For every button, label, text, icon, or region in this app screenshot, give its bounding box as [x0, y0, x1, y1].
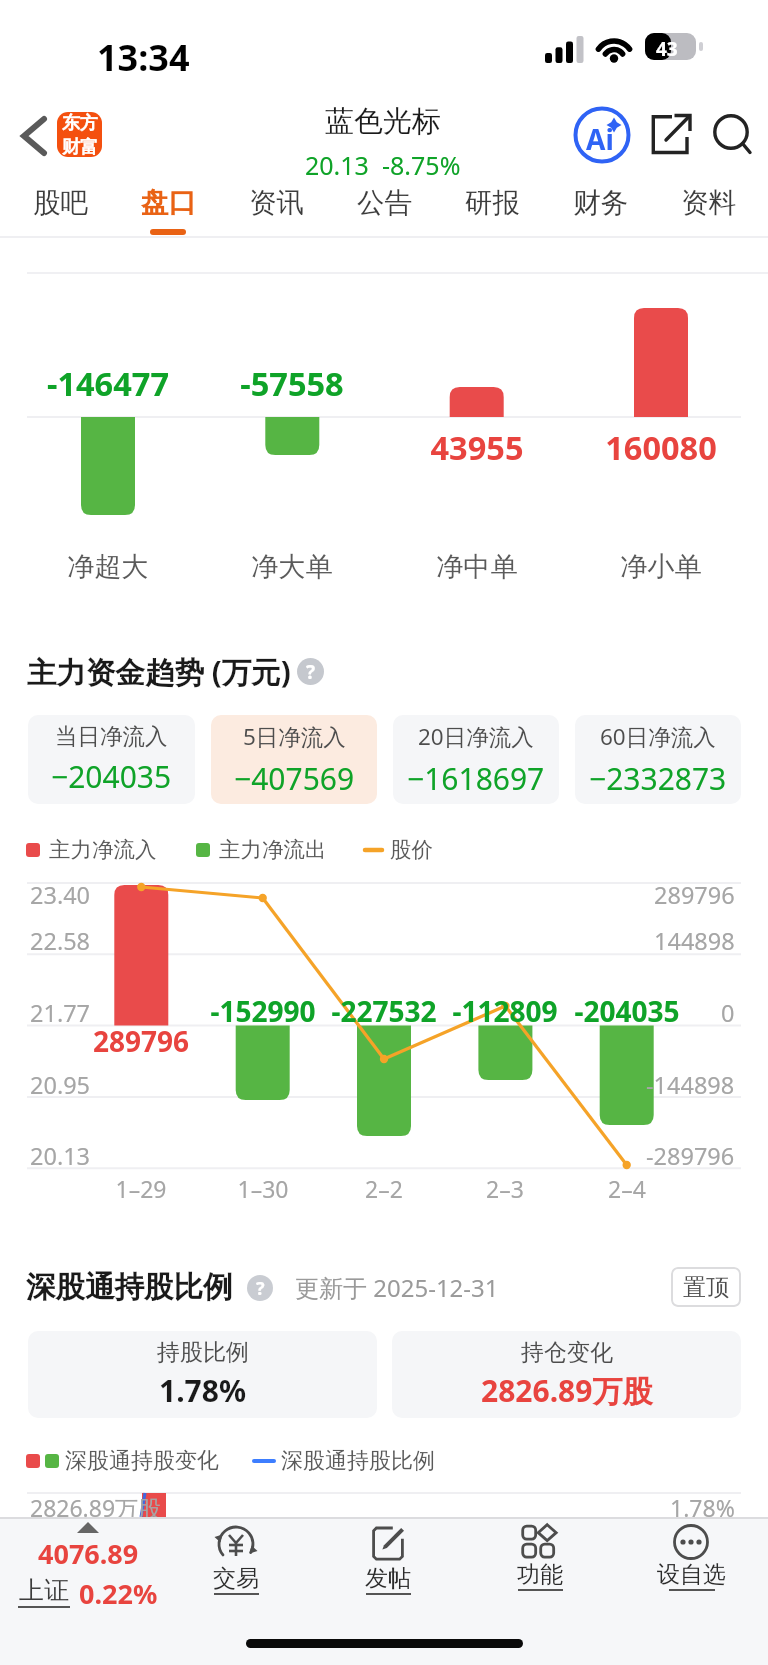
staticText: 1–29 [41, 1173, 241, 1204]
staticText: 置顶 [683, 1273, 729, 1302]
staticText: 20.95 [30, 1069, 91, 1101]
staticText: 0 [721, 997, 735, 1029]
staticText: 2–2 [284, 1173, 484, 1204]
staticText: Ai [586, 120, 614, 158]
staticText: 净大单 [192, 550, 392, 584]
staticText: 20.13 [30, 1140, 91, 1172]
staticText: 净小单 [561, 550, 761, 584]
button[interactable]: 财务 [546, 186, 654, 235]
staticText: 东方 [62, 112, 98, 135]
button[interactable]: 持股比例 [28, 1331, 377, 1418]
staticText: -227532 [234, 992, 534, 1030]
staticText: 持股比例 [157, 1338, 249, 1367]
staticText: 289796 [0, 1022, 291, 1060]
staticText: 深股通持股变化 [65, 1447, 219, 1475]
staticText: 2826.89万股 [481, 1370, 653, 1411]
button[interactable]: 当日净流入 [28, 715, 195, 804]
button[interactable]: Search [708, 110, 760, 162]
button[interactable]: 资讯 [222, 186, 330, 235]
staticText: 股价 [390, 836, 433, 863]
staticText: 160080 [511, 425, 768, 469]
staticText: 1.78% [670, 1492, 735, 1523]
staticText: 设自选 [657, 1560, 726, 1589]
button[interactable]: 持仓变化 [392, 1331, 741, 1418]
staticText: 持仓变化 [521, 1338, 613, 1367]
staticText: 21.77 [30, 997, 91, 1029]
staticText: 上证 [19, 1575, 69, 1606]
button[interactable]: 交易 [176, 1524, 296, 1595]
button[interactable]: 东方 [57, 112, 102, 157]
staticText: 深股通持股比例 [281, 1447, 435, 1475]
staticText: −1618697 [407, 758, 545, 799]
button[interactable]: 置顶 [671, 1267, 741, 1307]
staticText: 13:34 [97, 33, 190, 82]
staticText: -112809 [355, 992, 655, 1030]
staticText: 资讯 [249, 186, 304, 221]
staticText: -146477 [0, 361, 258, 405]
staticText: -289796 [646, 1140, 735, 1172]
staticText: 净中单 [377, 550, 577, 584]
staticText: 23.40 [30, 879, 91, 911]
staticText: −2332873 [589, 758, 727, 799]
staticText: 股吧 [33, 186, 88, 221]
staticText: ? [256, 1276, 265, 1301]
staticText: 主力净流入 [49, 836, 157, 863]
staticText: 资料 [681, 186, 736, 221]
button[interactable]: Help [297, 658, 324, 685]
button[interactable]: 5日净流入 [211, 715, 377, 804]
staticText: 发帖 [365, 1564, 411, 1593]
button[interactable]: Back [12, 108, 56, 164]
staticText: 43 [656, 36, 678, 62]
button[interactable]: AI assistant [573, 106, 631, 164]
staticText: 60日净流入 [600, 721, 716, 752]
staticText: 5日净流入 [243, 721, 346, 752]
staticText: 0.22% [79, 1575, 158, 1612]
staticText: 2–4 [527, 1173, 727, 1204]
staticText: −407569 [234, 758, 355, 799]
staticText: -152990 [113, 992, 413, 1030]
staticText: -8.75% [382, 148, 461, 182]
button[interactable]: 盘口 [114, 186, 222, 235]
staticText: 主力资金趋势 (万元) [27, 651, 291, 691]
staticText: 289796 [654, 879, 735, 911]
button[interactable]: Help [247, 1275, 273, 1301]
staticText: 研报 [465, 186, 520, 221]
staticText: 2826.89万股 [30, 1492, 162, 1523]
staticText: 1–30 [163, 1173, 363, 1204]
staticText: 财富 [62, 136, 98, 157]
button[interactable]: 功能 [480, 1524, 600, 1591]
button[interactable]: 公告 [330, 186, 438, 235]
staticText: 净超大 [8, 550, 208, 584]
staticText: 公告 [357, 186, 412, 221]
staticText: 20.13 [305, 148, 369, 182]
button[interactable]: 股吧 [6, 186, 114, 235]
staticText: 功能 [517, 1560, 563, 1589]
staticText: 4076.89 [38, 1535, 139, 1572]
button[interactable]: 设自选 [631, 1524, 751, 1591]
staticText: 20日净流入 [418, 721, 534, 752]
staticText: 蓝色光标 [325, 103, 441, 140]
button[interactable]: 研报 [438, 186, 546, 235]
staticText: 当日净流入 [55, 722, 168, 750]
button[interactable]: 60日净流入 [575, 715, 741, 804]
staticText: 主力净流出 [219, 836, 327, 863]
staticText: -204035 [477, 992, 768, 1030]
staticText: 43955 [327, 425, 627, 469]
button[interactable]: 4076.89 [10, 1522, 166, 1612]
staticText: 144898 [654, 925, 735, 957]
button[interactable]: Share [648, 110, 696, 158]
button[interactable]: 资料 [654, 186, 762, 235]
staticText: 财务 [573, 186, 628, 221]
staticText: 交易 [213, 1564, 259, 1593]
staticText: 深股通持股比例 [26, 1269, 233, 1306]
staticText: 22.58 [30, 925, 91, 957]
staticText: 1.78% [159, 1370, 246, 1411]
staticText: −204035 [51, 756, 172, 797]
staticText: ? [306, 659, 316, 685]
staticText: 2–3 [405, 1173, 605, 1204]
button[interactable]: 20日净流入 [393, 715, 559, 804]
staticText: -57558 [142, 361, 442, 405]
staticText: 更新于 2025-12-31 [295, 1271, 499, 1304]
staticText: -144898 [646, 1069, 735, 1101]
button[interactable]: 发帖 [328, 1524, 448, 1595]
